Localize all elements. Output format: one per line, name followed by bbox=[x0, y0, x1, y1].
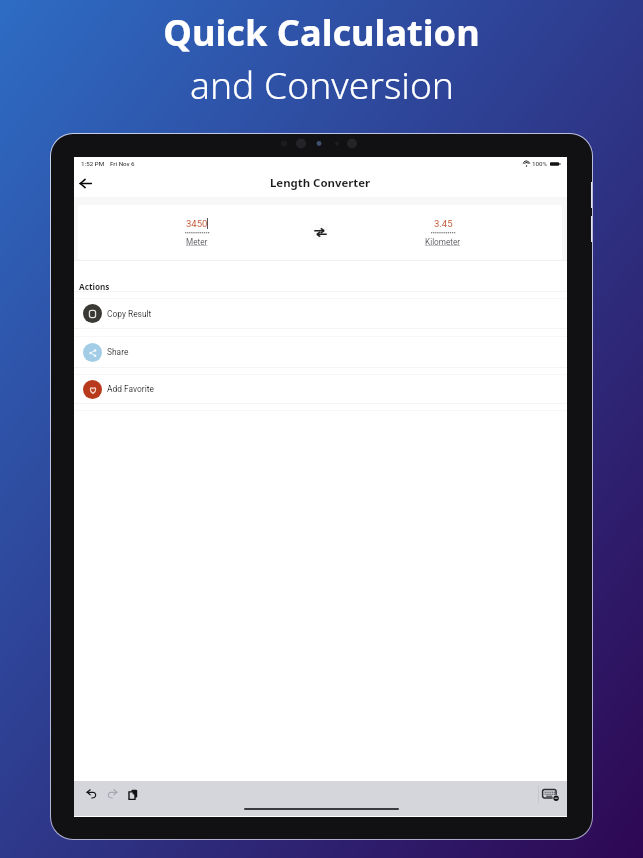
staticText: Length Converter bbox=[270, 175, 371, 191]
button[interactable]: Paste bbox=[124, 785, 142, 803]
staticText: Actions bbox=[79, 281, 110, 292]
staticText: Meter bbox=[186, 237, 208, 247]
staticText: Copy Result bbox=[107, 309, 152, 319]
staticText: Add Favorite bbox=[107, 384, 154, 394]
button[interactable]: Swap units bbox=[311, 223, 329, 241]
staticText: and Conversion bbox=[190, 59, 454, 110]
button[interactable]: Add Favorite bbox=[74, 375, 567, 403]
button[interactable]: Redo bbox=[103, 785, 121, 803]
staticText: Fri Nov 6 bbox=[110, 160, 135, 167]
button[interactable]: 3.45 bbox=[398, 205, 488, 260]
button[interactable]: Copy Result bbox=[74, 299, 567, 328]
button[interactable]: Undo bbox=[82, 785, 100, 803]
staticText: Share bbox=[107, 347, 129, 357]
staticText: Quick Calculation bbox=[163, 7, 480, 56]
button[interactable]: 3450 bbox=[152, 205, 242, 260]
staticText: 3.45 bbox=[434, 218, 453, 229]
staticText: 100% bbox=[532, 160, 548, 167]
button[interactable]: Share bbox=[74, 337, 567, 367]
button[interactable]: Hide keyboard bbox=[542, 789, 559, 802]
staticText: Kilometer bbox=[425, 237, 461, 247]
staticText: 3450 bbox=[186, 218, 208, 229]
staticText: 1:52 PM bbox=[81, 160, 105, 167]
button[interactable]: Back bbox=[74, 172, 96, 194]
